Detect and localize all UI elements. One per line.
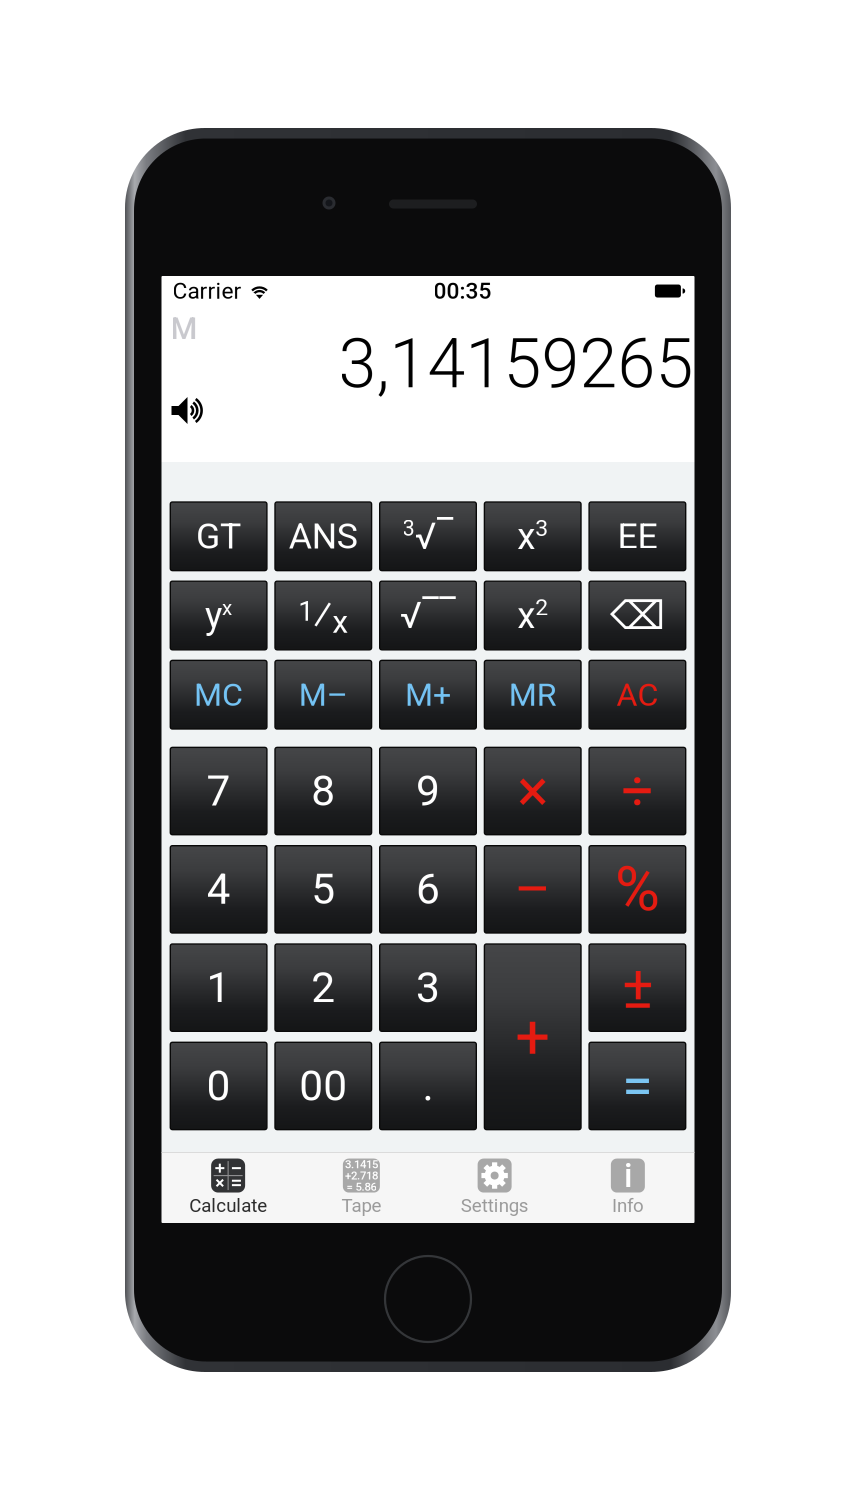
button[interactable]: Sound [170, 395, 204, 427]
button[interactable]: 4 [170, 846, 267, 933]
button[interactable]: = [589, 1042, 686, 1130]
staticText: x2 [517, 594, 548, 637]
button[interactable]: ± [589, 944, 686, 1031]
staticText: i [624, 1156, 632, 1195]
button[interactable]: M+ [380, 660, 476, 729]
staticText: 1⁄x [298, 591, 348, 640]
staticText: MC [194, 676, 243, 714]
staticText: 6 [416, 864, 440, 914]
button[interactable]: 9 [380, 747, 476, 835]
staticText: GT [196, 515, 241, 557]
staticText: 00 [299, 1061, 347, 1111]
button[interactable]: 1 [170, 944, 267, 1031]
staticText: + [515, 1001, 550, 1073]
staticText: Carrier [172, 278, 241, 304]
staticText: 2 [311, 963, 335, 1012]
staticText: Calculate [189, 1195, 267, 1216]
staticText: = [622, 1053, 653, 1119]
staticText: 8 [311, 766, 335, 816]
button[interactable]: . [380, 1042, 476, 1130]
button[interactable]: delete [589, 581, 686, 650]
staticText: M [171, 311, 198, 347]
staticText: 4 [207, 864, 231, 914]
button[interactable]: square root [380, 581, 476, 650]
button[interactable]: x cubed [484, 502, 581, 571]
button[interactable]: 3.1415 [295, 1152, 428, 1223]
button[interactable]: 6 [380, 846, 476, 933]
staticText: . [422, 1061, 433, 1111]
staticText: ⌫ [610, 593, 665, 638]
staticText: 0 [207, 1061, 231, 1111]
button[interactable]: one over x [275, 581, 372, 650]
staticText: 3 [416, 963, 440, 1012]
button[interactable]: GT [170, 502, 267, 571]
button[interactable]: y to the power x [170, 581, 267, 650]
button[interactable]: 00 [275, 1042, 372, 1130]
staticText: × [517, 757, 548, 825]
button[interactable]: ÷ [589, 747, 686, 835]
button[interactable]: Calculate [161, 1152, 295, 1223]
staticText: 00:35 [433, 278, 491, 304]
staticText: +2.718 [345, 1169, 378, 1182]
button[interactable]: AC [589, 660, 686, 729]
button[interactable]: 8 [275, 747, 372, 835]
staticText: 3√‾ [402, 515, 453, 557]
staticText: 3,14159265 [338, 324, 693, 404]
button[interactable]: MC [170, 660, 267, 729]
staticText: – [514, 856, 551, 922]
button[interactable]: ANS [275, 502, 372, 571]
staticText: √‾‾ [400, 594, 456, 637]
button[interactable]: 7 [170, 747, 267, 835]
button[interactable]: 3 [380, 944, 476, 1031]
staticText: Settings [461, 1195, 529, 1216]
staticText: 5 [311, 864, 335, 914]
staticText: M– [299, 676, 348, 714]
staticText: = 5.86 [346, 1180, 376, 1193]
staticText: Tape [341, 1195, 381, 1216]
staticText: 7 [207, 766, 231, 816]
staticText: ÷ [621, 758, 653, 824]
staticText: AC [616, 676, 658, 714]
staticText: yx [205, 595, 232, 636]
button[interactable]: M– [275, 660, 372, 729]
button[interactable]: MR [484, 660, 581, 729]
button[interactable]: EE [589, 502, 686, 571]
staticText: Info [612, 1195, 644, 1216]
button[interactable]: 0 [170, 1042, 267, 1130]
button[interactable]: i [561, 1152, 694, 1223]
button[interactable]: % [589, 846, 686, 933]
button[interactable]: Settings [428, 1152, 561, 1223]
button[interactable]: 2 [275, 944, 372, 1031]
button[interactable]: cube root [380, 502, 476, 571]
staticText: ± [622, 953, 653, 1022]
button[interactable]: plus [484, 944, 581, 1130]
staticText: 3.1415 [345, 1158, 378, 1171]
staticText: M+ [405, 676, 451, 714]
staticText: % [615, 853, 660, 925]
button[interactable]: – [484, 846, 581, 933]
button[interactable]: 5 [275, 846, 372, 933]
button[interactable]: x squared [484, 581, 581, 650]
staticText: MR [509, 676, 557, 714]
staticText: 1 [207, 963, 231, 1012]
staticText: EE [617, 515, 657, 557]
staticText: ANS [289, 515, 358, 557]
staticText: 9 [416, 766, 440, 816]
button[interactable]: × [484, 747, 581, 835]
staticText: x3 [517, 515, 548, 557]
